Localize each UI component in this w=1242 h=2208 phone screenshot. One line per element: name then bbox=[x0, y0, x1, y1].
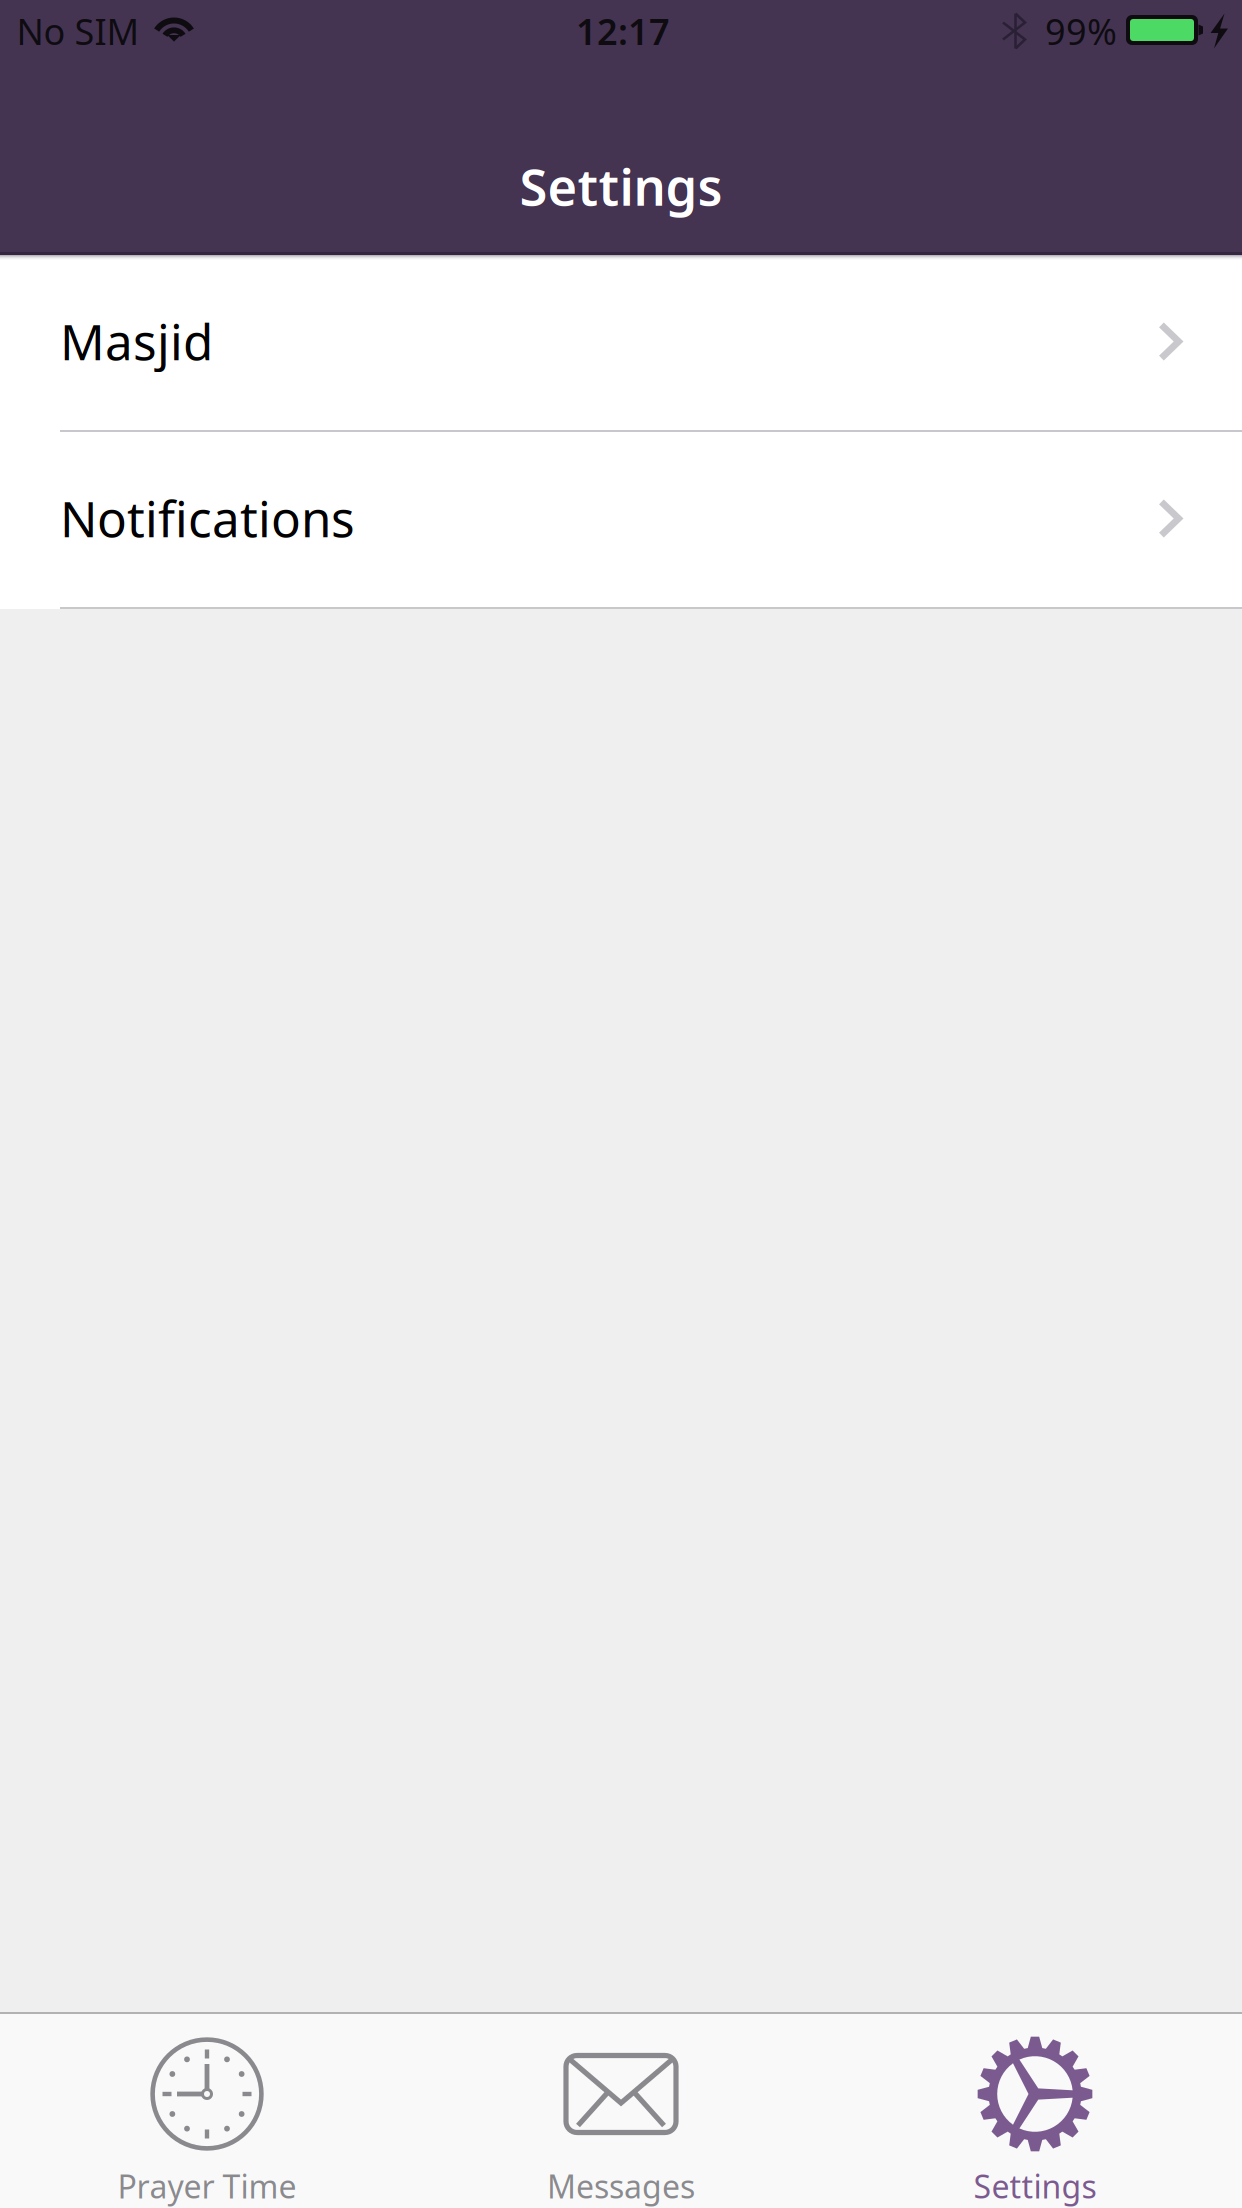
staticText: Settings bbox=[519, 152, 722, 220]
staticText: Notifications bbox=[60, 485, 355, 551]
button[interactable]: Settings bbox=[828, 2012, 1242, 2208]
staticText: Messages bbox=[547, 2165, 695, 2207]
button[interactable]: Prayer Time bbox=[0, 2012, 414, 2208]
staticText: No SIM bbox=[16, 7, 139, 55]
button[interactable]: Notifications bbox=[0, 432, 1242, 609]
staticText: 12:17 bbox=[576, 7, 670, 55]
staticText: Prayer Time bbox=[117, 2165, 296, 2207]
staticText: Masjid bbox=[60, 308, 213, 374]
staticText: 99% bbox=[1045, 7, 1117, 55]
staticText: Settings bbox=[973, 2165, 1096, 2207]
button[interactable]: Messages bbox=[414, 2012, 828, 2208]
button[interactable]: Masjid bbox=[0, 255, 1242, 432]
